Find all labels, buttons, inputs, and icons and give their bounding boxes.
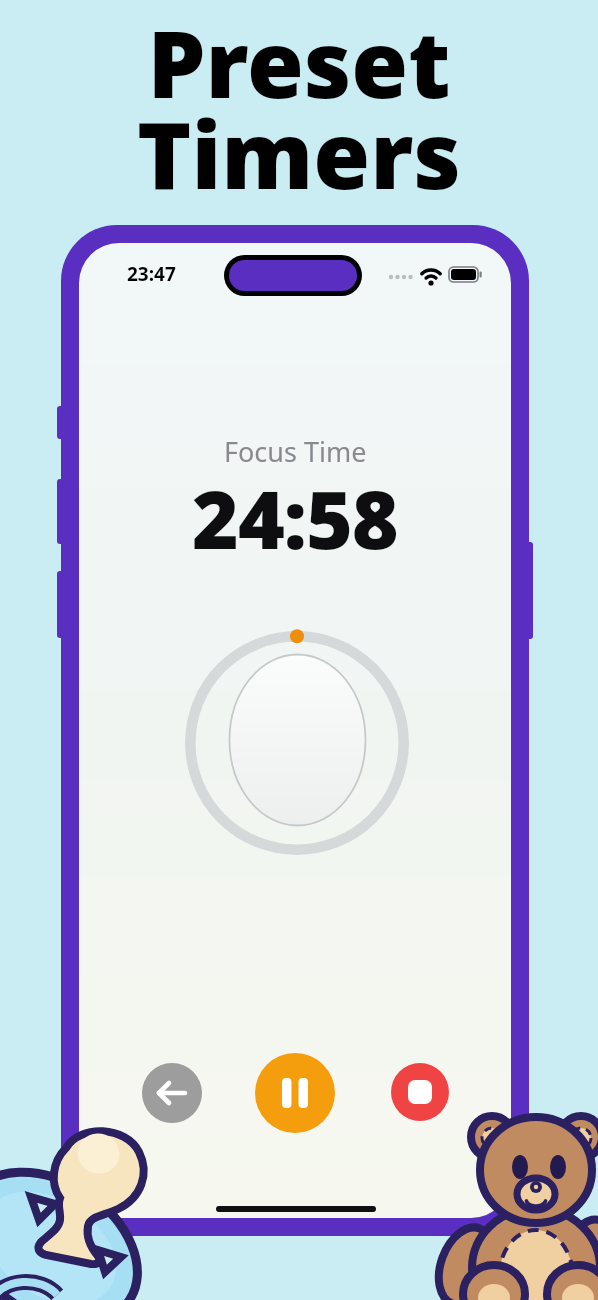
button[interactable] [255, 1053, 335, 1133]
staticText: 24:58 [192, 463, 398, 572]
button[interactable] [142, 1063, 202, 1123]
button[interactable] [391, 1063, 449, 1121]
staticText: Preset Timers [137, 0, 461, 216]
staticText: Focus Time [224, 433, 367, 470]
button[interactable] [230, 655, 366, 826]
staticText: 23:47 [127, 261, 176, 287]
